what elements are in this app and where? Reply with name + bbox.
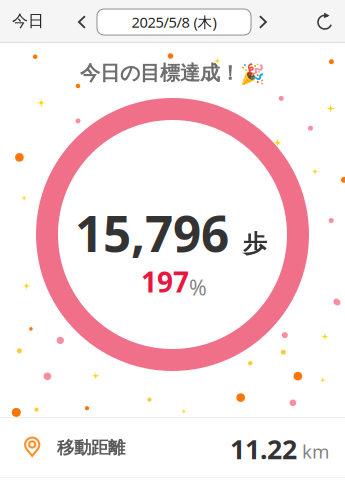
staticText: % <box>189 273 207 301</box>
button[interactable]: 更新 <box>305 0 345 42</box>
staticText: 歩 <box>243 229 267 258</box>
button[interactable]: 次の日 <box>247 0 279 44</box>
staticText: km <box>302 439 329 464</box>
button[interactable]: 今日 <box>0 0 56 42</box>
button[interactable]: 移動距離 <box>0 418 345 478</box>
button[interactable]: 前の日 <box>66 0 98 44</box>
staticText: 11.22 <box>230 431 297 467</box>
staticText: 今日 <box>12 11 44 31</box>
staticText: 15,796 <box>75 200 229 265</box>
staticText: 197 <box>141 263 189 300</box>
staticText: 2025/5/8 (木) <box>131 12 216 32</box>
staticText: 今日の目標達成！🎉 <box>80 61 265 85</box>
button[interactable]: 2025/5/8 (木) <box>97 9 251 35</box>
staticText: 移動距離 <box>57 437 125 458</box>
